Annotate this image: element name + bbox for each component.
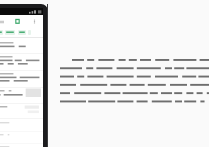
button[interactable] (5, 30, 15, 35)
button[interactable]: More options (26, 15, 43, 28)
button[interactable] (0, 30, 3, 35)
button[interactable] (18, 30, 26, 35)
button[interactable]: Menu (0, 15, 9, 28)
button[interactable] (0, 38, 43, 147)
button[interactable]: Add (9, 15, 26, 28)
